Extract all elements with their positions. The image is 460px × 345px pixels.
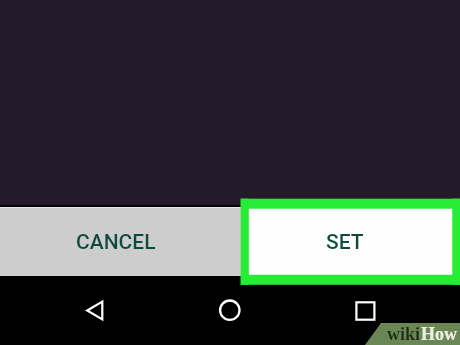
button[interactable]: SET <box>244 208 460 276</box>
button[interactable]: Home <box>209 276 251 345</box>
button[interactable]: CANCEL <box>0 208 244 276</box>
staticText: CANCEL <box>76 230 156 255</box>
button[interactable]: Recent apps <box>344 276 386 345</box>
staticText: SET <box>326 230 364 255</box>
button[interactable]: Back <box>74 276 116 345</box>
staticText: wiki <box>387 324 421 344</box>
staticText: How <box>421 324 457 344</box>
